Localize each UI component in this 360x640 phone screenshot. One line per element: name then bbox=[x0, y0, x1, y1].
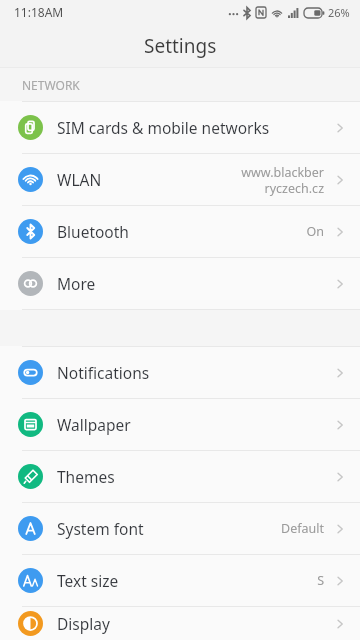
staticText: 26% bbox=[328, 5, 350, 20]
staticText: NETWORK bbox=[22, 77, 80, 93]
button[interactable]: SIM cards & mobile networks bbox=[0, 102, 360, 153]
staticText: Display bbox=[57, 613, 110, 634]
button[interactable]: Text size bbox=[0, 555, 360, 606]
button[interactable]: Display bbox=[0, 607, 360, 640]
staticText: Settings bbox=[144, 33, 217, 59]
staticText: Text size bbox=[57, 570, 119, 591]
button[interactable]: Wallpaper bbox=[0, 399, 360, 450]
button[interactable]: WLAN bbox=[0, 154, 360, 205]
staticText: WLAN bbox=[57, 169, 102, 190]
staticText: System font bbox=[57, 518, 144, 539]
staticText: SIM cards & mobile networks bbox=[57, 117, 270, 138]
staticText: On bbox=[306, 223, 324, 240]
staticText: www.blackber ryczech.cz bbox=[241, 164, 324, 196]
staticText: More bbox=[57, 273, 96, 294]
staticText: Wallpaper bbox=[57, 414, 131, 435]
staticText: Default bbox=[281, 520, 324, 537]
staticText: S bbox=[317, 572, 324, 589]
staticText: Bluetooth bbox=[57, 221, 129, 242]
button[interactable]: System font bbox=[0, 503, 360, 554]
button[interactable]: More bbox=[0, 258, 360, 309]
button[interactable]: Notifications bbox=[0, 347, 360, 398]
staticText: 11:18AM bbox=[14, 4, 64, 20]
staticText: Themes bbox=[57, 466, 115, 487]
button[interactable]: Bluetooth bbox=[0, 206, 360, 257]
staticText: Notifications bbox=[57, 362, 150, 383]
button[interactable]: Themes bbox=[0, 451, 360, 502]
